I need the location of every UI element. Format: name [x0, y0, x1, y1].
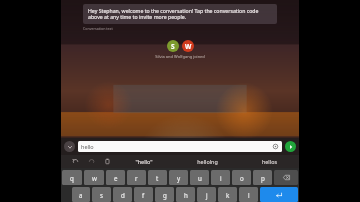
staticText: hello — [81, 143, 272, 150]
staticText: S — [171, 42, 175, 51]
staticText: w — [92, 174, 97, 182]
button[interactable]: Settings — [272, 143, 279, 150]
button[interactable]: g — [155, 187, 174, 202]
button[interactable]: l — [239, 187, 258, 202]
button[interactable]: w — [84, 170, 104, 185]
button[interactable]: "hello" — [112, 155, 175, 168]
staticText: a — [79, 191, 83, 199]
button[interactable]: Backspace — [274, 170, 298, 185]
staticText: "hello" — [135, 158, 153, 165]
staticText: l — [248, 191, 250, 199]
button[interactable]: Undo — [71, 157, 80, 166]
staticText: Silvia and Wolfgang joined — [155, 54, 205, 59]
button[interactable]: p — [253, 170, 272, 185]
staticText: Conversation text — [83, 26, 113, 31]
button[interactable]: Redo — [87, 157, 96, 166]
staticText: j — [206, 191, 208, 199]
staticText: o — [240, 174, 244, 182]
staticText: y — [177, 174, 181, 182]
button[interactable]: d — [113, 187, 132, 202]
staticText: q — [70, 174, 74, 182]
button[interactable]: W — [182, 40, 194, 52]
staticText: d — [121, 191, 125, 199]
staticText: s — [100, 191, 103, 199]
staticText: f — [142, 191, 145, 199]
button[interactable]: Send — [285, 141, 296, 152]
button[interactable]: k — [218, 187, 237, 202]
button[interactable]: r — [127, 170, 146, 185]
button[interactable]: Expand options — [64, 141, 75, 152]
staticText: t — [156, 174, 159, 182]
button[interactable]: Hey Stephan, welcome to the conversation… — [83, 4, 277, 24]
button[interactable]: j — [197, 187, 216, 202]
staticText: k — [226, 191, 230, 199]
button[interactable]: Enter — [260, 187, 298, 202]
button[interactable]: e — [106, 170, 125, 185]
button[interactable]: y — [169, 170, 188, 185]
staticText: r — [135, 174, 138, 182]
staticText: W — [185, 42, 192, 51]
staticText: e — [114, 174, 118, 182]
staticText: i — [220, 174, 222, 182]
staticText: hellolng — [197, 158, 218, 165]
button[interactable]: hellos — [240, 155, 299, 168]
button[interactable]: a — [72, 187, 90, 202]
staticText: h — [184, 191, 188, 199]
button[interactable]: o — [232, 170, 251, 185]
button[interactable]: h — [176, 187, 195, 202]
button[interactable]: hellolng — [175, 155, 240, 168]
staticText: Hey Stephan, welcome to the conversation… — [88, 7, 272, 21]
button[interactable]: u — [190, 170, 209, 185]
button[interactable]: i — [211, 170, 230, 185]
button[interactable]: f — [134, 187, 153, 202]
button[interactable]: S — [167, 40, 179, 52]
button[interactable]: s — [92, 187, 111, 202]
button[interactable]: hello — [78, 141, 282, 152]
button[interactable]: q — [62, 170, 82, 185]
staticText: hellos — [262, 158, 277, 165]
staticText: u — [198, 174, 202, 182]
button[interactable]: Clipboard — [103, 157, 112, 166]
button[interactable]: t — [148, 170, 167, 185]
staticText: g — [163, 191, 167, 199]
staticText: p — [261, 174, 265, 182]
